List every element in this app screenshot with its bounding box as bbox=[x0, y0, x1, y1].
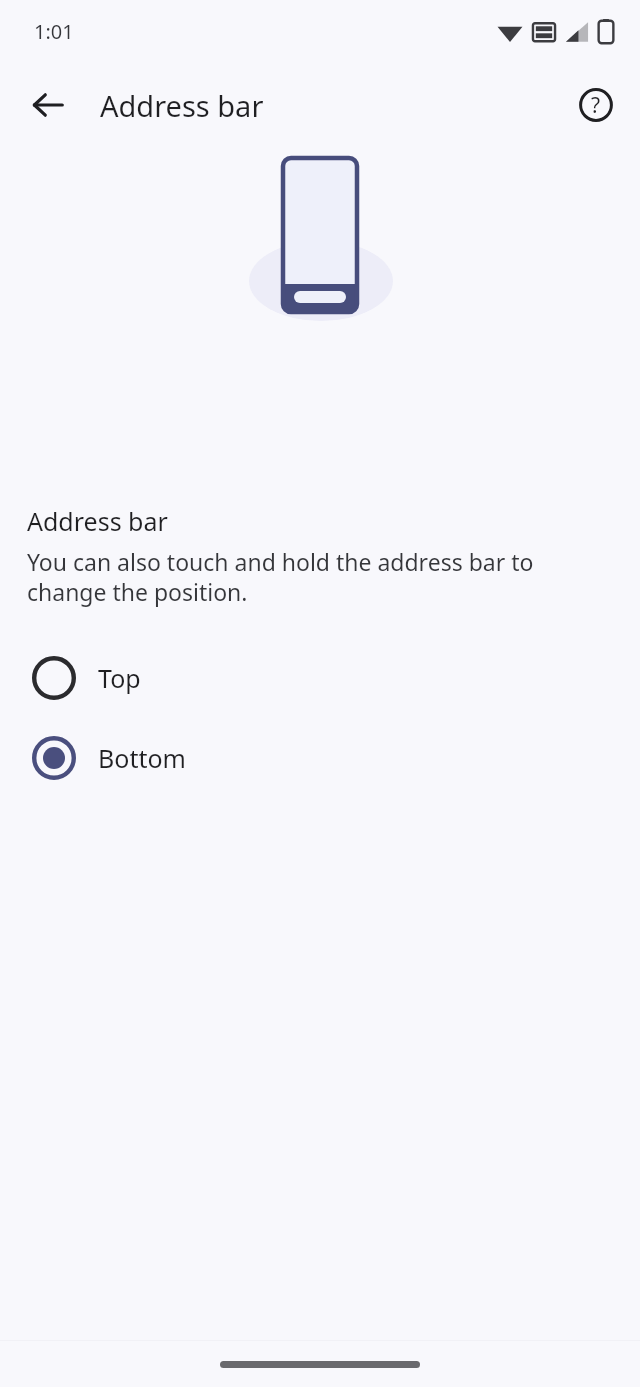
staticText: Top bbox=[98, 661, 141, 695]
staticText: Address bar bbox=[100, 86, 264, 125]
button[interactable]: Top bbox=[0, 638, 640, 718]
staticText: ? bbox=[591, 91, 601, 120]
staticText: 1:01 bbox=[34, 18, 74, 45]
button[interactable]: Help bbox=[564, 73, 628, 137]
staticText: Address bar bbox=[27, 504, 168, 538]
staticText: You can also touch and hold the address … bbox=[27, 546, 616, 608]
staticText: Bottom bbox=[98, 741, 186, 775]
button[interactable]: Back bbox=[14, 71, 82, 139]
button[interactable]: Bottom bbox=[0, 718, 640, 798]
